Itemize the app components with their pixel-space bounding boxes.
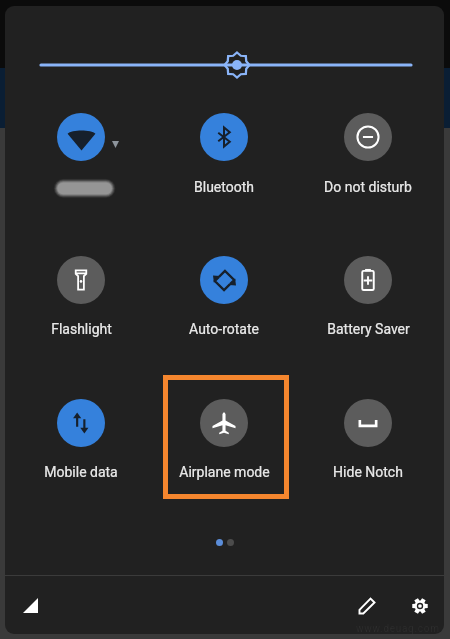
button[interactable] xyxy=(307,375,433,499)
staticText: Flashlight xyxy=(51,321,112,337)
button[interactable] xyxy=(163,375,289,499)
staticText: Airplane mode xyxy=(179,464,270,480)
button[interactable]: Edit xyxy=(350,589,383,622)
button[interactable]: Brightness xyxy=(36,45,416,85)
button[interactable]: Signal strength xyxy=(14,589,47,622)
button[interactable] xyxy=(163,90,289,214)
staticText: Auto-rotate xyxy=(189,321,259,337)
button[interactable] xyxy=(20,233,146,357)
staticText: Do not disturb xyxy=(324,179,412,195)
staticText: Hide Notch xyxy=(333,464,403,480)
button[interactable]: Settings xyxy=(403,589,436,622)
staticText: Battery Saver xyxy=(327,321,410,337)
button[interactable] xyxy=(307,233,433,357)
button[interactable]: Wi-Fi xyxy=(20,90,146,214)
staticText: www.deuaq.com xyxy=(356,623,440,634)
staticText: Bluetooth xyxy=(194,179,254,195)
button[interactable] xyxy=(20,375,146,499)
button[interactable] xyxy=(163,233,289,357)
staticText: Mobile data xyxy=(44,464,118,480)
button[interactable] xyxy=(307,90,433,214)
